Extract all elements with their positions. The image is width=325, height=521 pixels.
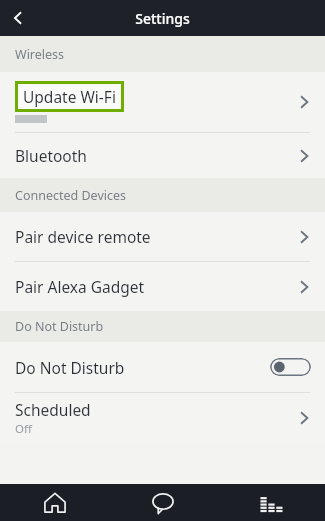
- button[interactable]: Equalizer: [217, 484, 325, 521]
- button[interactable]: Do Not Disturb toggle: [270, 358, 311, 376]
- button[interactable]: Scheduled: [0, 393, 325, 442]
- button[interactable]: Pair device remote: [0, 212, 325, 261]
- button[interactable]: Pair Alexa Gadget: [0, 262, 325, 311]
- staticText: Do Not Disturb: [15, 357, 125, 378]
- button[interactable]: Update Wi-Fi: [0, 72, 325, 132]
- staticText: Bluetooth: [15, 145, 87, 166]
- staticText: Update Wi-Fi: [23, 86, 116, 107]
- button[interactable]: Messages: [109, 484, 217, 521]
- button[interactable]: Home: [0, 484, 109, 521]
- staticText: Off: [15, 421, 32, 437]
- button[interactable]: Back: [0, 0, 36, 36]
- staticText: Connected Devices: [15, 187, 127, 204]
- staticText: Scheduled: [15, 399, 91, 420]
- staticText: Wireless: [15, 46, 65, 63]
- staticText: Settings: [135, 9, 190, 28]
- staticText: Pair Alexa Gadget: [15, 276, 145, 297]
- button[interactable]: Do Not Disturb: [0, 342, 325, 392]
- staticText: Do Not Disturb: [15, 318, 104, 335]
- button[interactable]: Bluetooth: [0, 133, 325, 178]
- staticText: Pair device remote: [15, 226, 151, 247]
